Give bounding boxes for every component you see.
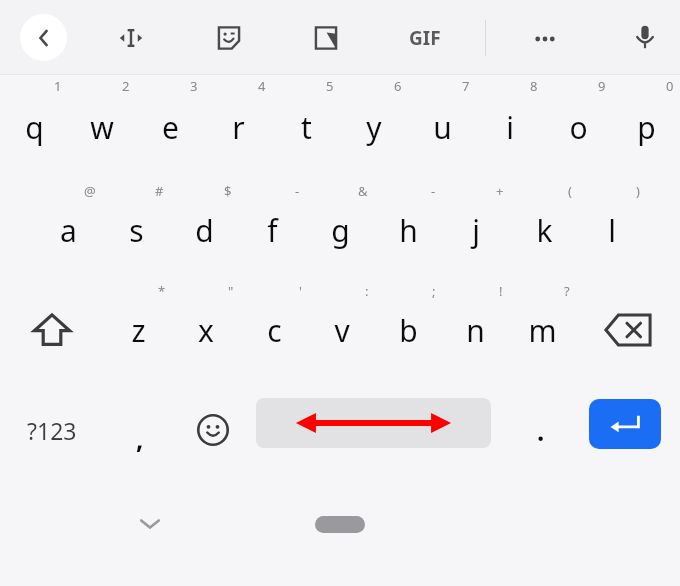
staticText: m bbox=[528, 310, 557, 351]
staticText: - bbox=[295, 182, 300, 200]
staticText: c bbox=[267, 310, 282, 351]
staticText: 6 bbox=[394, 77, 402, 95]
staticText: 5 bbox=[326, 77, 334, 95]
staticText: 8 bbox=[530, 77, 538, 95]
button[interactable]: e bbox=[136, 75, 204, 180]
staticText: 3 bbox=[190, 77, 198, 95]
button[interactable]: ?123 bbox=[0, 380, 104, 480]
button[interactable]: Back bbox=[20, 14, 67, 61]
staticText: ' bbox=[299, 282, 302, 300]
staticText: - bbox=[431, 182, 436, 200]
button[interactable]: w bbox=[68, 75, 136, 180]
staticText: ) bbox=[636, 182, 640, 200]
staticText: e bbox=[162, 107, 179, 148]
staticText: q bbox=[25, 107, 44, 148]
staticText: . bbox=[537, 413, 545, 448]
staticText: p bbox=[637, 107, 656, 148]
button[interactable]: Space bbox=[256, 398, 491, 448]
button[interactable]: u bbox=[408, 75, 476, 180]
staticText: ( bbox=[568, 182, 572, 200]
staticText: t bbox=[301, 107, 312, 148]
staticText: # bbox=[155, 182, 164, 200]
button[interactable]: Emoji bbox=[176, 380, 250, 480]
staticText: $ bbox=[224, 182, 232, 200]
button[interactable]: m bbox=[509, 280, 576, 380]
staticText: : bbox=[365, 282, 369, 300]
staticText: s bbox=[129, 210, 144, 251]
staticText: GIF bbox=[409, 25, 441, 51]
button[interactable]: h bbox=[374, 180, 442, 280]
button[interactable]: Voice input bbox=[623, 15, 667, 59]
staticText: j bbox=[472, 210, 480, 251]
button[interactable]: v bbox=[308, 280, 375, 380]
staticText: 2 bbox=[122, 77, 130, 95]
staticText: l bbox=[608, 210, 616, 251]
staticText: ?123 bbox=[27, 415, 77, 446]
button[interactable]: p bbox=[612, 75, 680, 180]
button[interactable]: z bbox=[104, 280, 172, 380]
staticText: @ bbox=[84, 182, 96, 200]
button[interactable]: Home bbox=[315, 516, 365, 533]
button[interactable]: , bbox=[104, 380, 176, 480]
button[interactable]: o bbox=[544, 75, 612, 180]
staticText: d bbox=[195, 210, 214, 251]
staticText: u bbox=[433, 107, 452, 148]
button[interactable]: . bbox=[503, 380, 579, 480]
button[interactable]: i bbox=[476, 75, 544, 180]
staticText: f bbox=[267, 210, 278, 251]
staticText: r bbox=[232, 107, 245, 148]
staticText: ; bbox=[432, 282, 436, 300]
button[interactable]: a bbox=[34, 180, 102, 280]
button[interactable]: k bbox=[510, 180, 578, 280]
button[interactable]: Shift bbox=[0, 280, 104, 380]
staticText: h bbox=[399, 210, 418, 251]
staticText: 1 bbox=[54, 77, 62, 95]
button[interactable]: b bbox=[375, 280, 442, 380]
button[interactable]: More options bbox=[523, 17, 567, 61]
staticText: , bbox=[136, 421, 144, 456]
staticText: & bbox=[358, 182, 368, 200]
staticText: 4 bbox=[258, 77, 266, 95]
button[interactable]: s bbox=[102, 180, 170, 280]
button[interactable]: d bbox=[170, 180, 238, 280]
staticText: 0 bbox=[666, 77, 674, 95]
button[interactable]: x bbox=[172, 280, 240, 380]
staticText: 7 bbox=[462, 77, 470, 95]
staticText: + bbox=[496, 182, 504, 200]
button[interactable]: c bbox=[240, 280, 308, 380]
staticText: o bbox=[569, 107, 588, 148]
staticText: v bbox=[334, 310, 350, 351]
button[interactable]: Enter bbox=[589, 399, 661, 449]
staticText: y bbox=[366, 107, 382, 148]
button[interactable]: j bbox=[442, 180, 510, 280]
button[interactable]: f bbox=[238, 180, 306, 280]
button[interactable]: Handwriting bbox=[305, 17, 347, 59]
button[interactable]: n bbox=[442, 280, 509, 380]
staticText: ? bbox=[564, 282, 570, 300]
staticText: k bbox=[536, 210, 553, 251]
button[interactable]: g bbox=[306, 180, 374, 280]
staticText: i bbox=[506, 107, 514, 148]
button[interactable]: Stickers bbox=[208, 17, 250, 59]
staticText: " bbox=[228, 282, 234, 300]
staticText: w bbox=[90, 107, 114, 148]
button[interactable]: t bbox=[272, 75, 340, 180]
staticText: 9 bbox=[598, 77, 606, 95]
staticText: * bbox=[158, 282, 166, 300]
staticText: n bbox=[466, 310, 485, 351]
button[interactable]: Move cursor bbox=[110, 17, 152, 59]
staticText: a bbox=[60, 210, 77, 251]
button[interactable]: Hide keyboard bbox=[126, 500, 174, 548]
button[interactable]: l bbox=[578, 180, 646, 280]
button[interactable]: Backspace bbox=[576, 280, 680, 380]
staticText: ! bbox=[499, 282, 503, 300]
button[interactable]: y bbox=[340, 75, 408, 180]
staticText: x bbox=[198, 310, 214, 351]
staticText: g bbox=[331, 210, 350, 251]
button[interactable]: q bbox=[0, 75, 68, 180]
staticText: b bbox=[399, 310, 418, 351]
button[interactable]: GIF bbox=[396, 17, 454, 59]
staticText: z bbox=[131, 310, 146, 351]
button[interactable]: r bbox=[204, 75, 272, 180]
